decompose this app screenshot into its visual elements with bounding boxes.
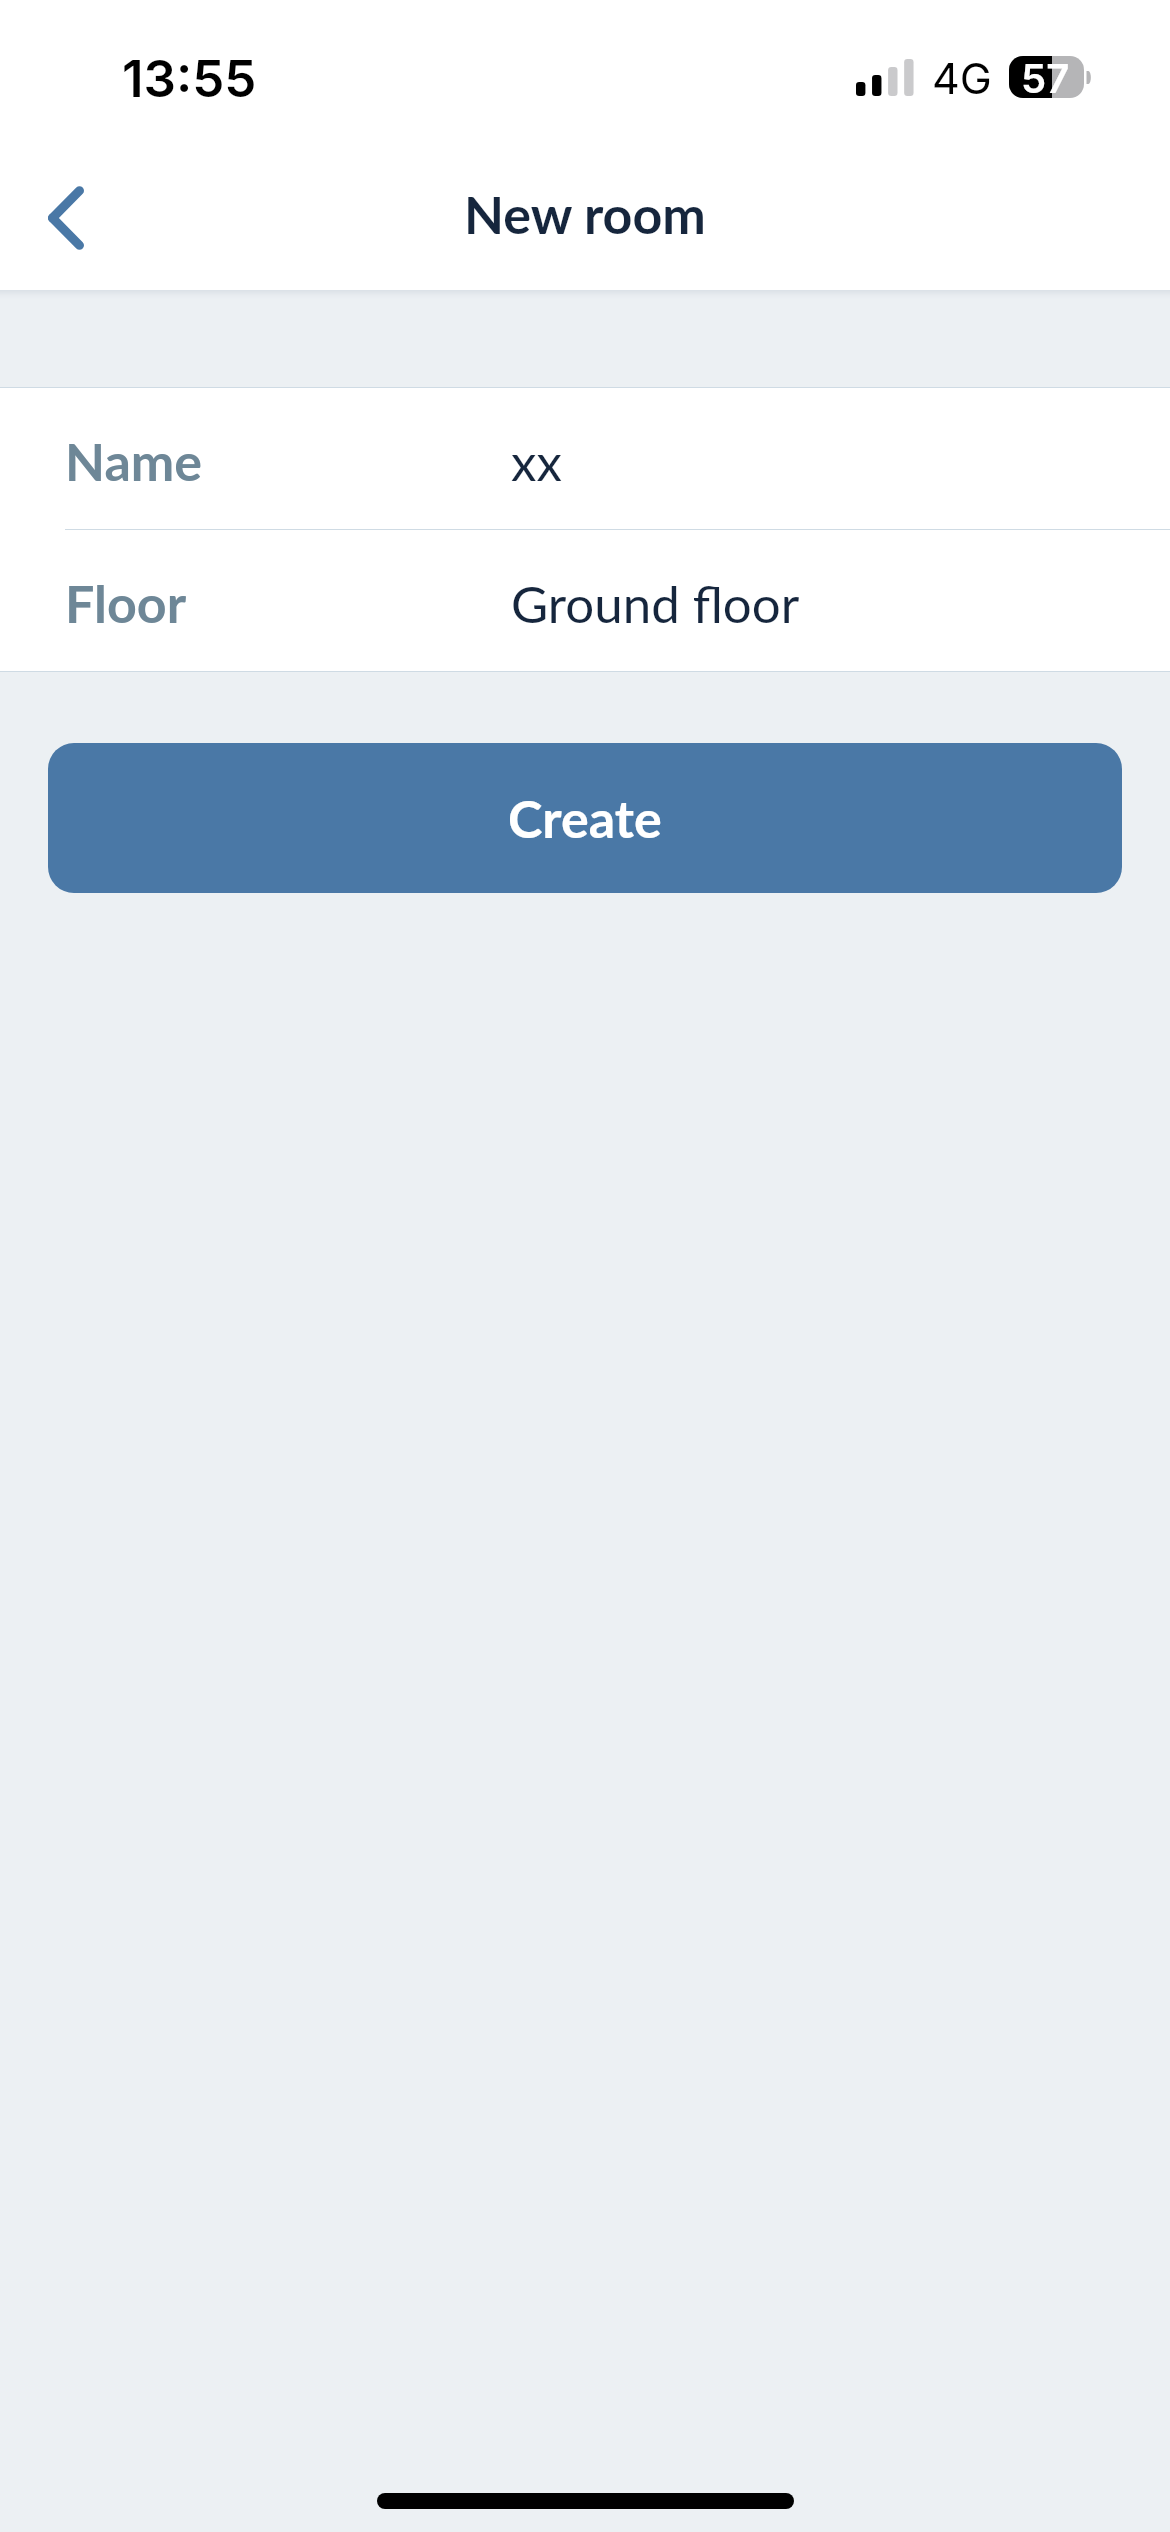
button[interactable]: Create bbox=[48, 743, 1122, 893]
staticText: Ground floor bbox=[511, 573, 800, 634]
staticText: Name bbox=[65, 430, 203, 492]
staticText: 4G bbox=[932, 52, 992, 104]
staticText: Floor bbox=[65, 572, 187, 634]
staticText: New room bbox=[464, 183, 706, 245]
staticText: Create bbox=[508, 787, 662, 849]
button[interactable]: Back bbox=[6, 158, 126, 278]
staticText: 57 bbox=[1021, 54, 1070, 96]
staticText: 13:55 bbox=[122, 48, 257, 110]
button[interactable]: Floor bbox=[0, 530, 1170, 671]
staticText: xx bbox=[511, 431, 562, 492]
button[interactable]: Name bbox=[0, 388, 1170, 529]
